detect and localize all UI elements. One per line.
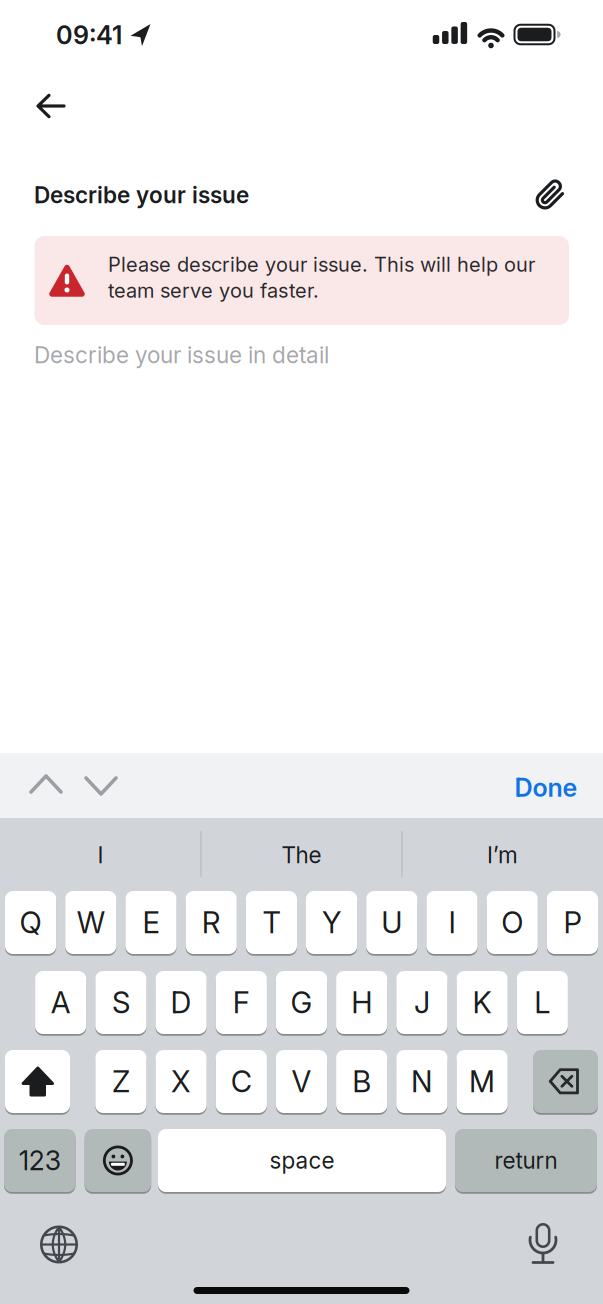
button[interactable]: R: [186, 891, 237, 954]
button[interactable]: I: [426, 891, 478, 954]
staticText: N: [411, 1064, 433, 1099]
button[interactable]: The: [206, 826, 396, 884]
button[interactable]: C: [216, 1050, 267, 1113]
button[interactable]: U: [366, 891, 417, 954]
button[interactable]: D: [155, 971, 207, 1034]
button[interactable]: O: [487, 891, 538, 954]
button[interactable]: M: [456, 1050, 508, 1113]
button[interactable]: L: [517, 971, 568, 1034]
staticText: I’m: [487, 842, 518, 868]
button[interactable]: return: [455, 1129, 597, 1192]
staticText: F: [233, 985, 250, 1020]
button[interactable]: Y: [306, 891, 357, 954]
staticText: The: [281, 842, 321, 868]
button[interactable]: Delete: [533, 1050, 598, 1113]
staticText: K: [473, 985, 492, 1020]
button[interactable]: Next field: [78, 775, 124, 801]
staticText: P: [563, 905, 581, 940]
button[interactable]: Z: [95, 1050, 146, 1113]
button[interactable]: F: [216, 971, 267, 1034]
staticText: 09:41: [56, 20, 122, 50]
staticText: X: [171, 1064, 191, 1099]
staticText: G: [290, 985, 312, 1020]
button[interactable]: Previous field: [23, 773, 69, 799]
button[interactable]: K: [456, 971, 508, 1034]
button[interactable]: A: [35, 971, 86, 1034]
staticText: U: [381, 905, 402, 940]
staticText: V: [291, 1064, 311, 1099]
button[interactable]: Back: [35, 84, 83, 128]
button[interactable]: N: [396, 1050, 447, 1113]
button[interactable]: I: [5, 826, 195, 884]
button[interactable]: J: [396, 971, 447, 1034]
staticText: Y: [322, 905, 341, 940]
button[interactable]: Shift: [5, 1050, 70, 1113]
staticText: E: [142, 905, 159, 940]
staticText: J: [414, 985, 430, 1020]
staticText: Please describe your issue. This will he…: [108, 253, 535, 276]
button[interactable]: H: [336, 971, 387, 1034]
button[interactable]: X: [155, 1050, 207, 1113]
staticText: A: [51, 985, 71, 1020]
button[interactable]: space: [158, 1129, 446, 1192]
staticText: space: [269, 1147, 334, 1174]
staticText: I: [448, 905, 455, 940]
staticText: Describe your issue: [34, 182, 249, 208]
button[interactable]: G: [276, 971, 327, 1034]
button[interactable]: B: [336, 1050, 387, 1113]
button[interactable]: Done: [514, 773, 577, 802]
staticText: S: [112, 985, 130, 1020]
staticText: 123: [19, 1145, 61, 1176]
staticText: O: [501, 905, 523, 940]
button[interactable]: S: [95, 971, 146, 1034]
button[interactable]: T: [246, 891, 297, 954]
staticText: I: [97, 842, 103, 868]
button[interactable]: Dictate: [521, 1221, 565, 1269]
staticText: Q: [20, 905, 42, 940]
button[interactable]: I’m: [407, 826, 597, 884]
button[interactable]: Numbers: [4, 1129, 75, 1192]
staticText: return: [494, 1147, 557, 1174]
staticText: R: [202, 905, 221, 940]
staticText: team serve you faster.: [108, 279, 319, 302]
staticText: H: [351, 985, 372, 1020]
staticText: D: [171, 985, 192, 1020]
staticText: T: [262, 905, 280, 940]
button[interactable]: V: [276, 1050, 327, 1113]
staticText: L: [534, 985, 550, 1020]
button[interactable]: E: [125, 891, 177, 954]
button[interactable]: P: [547, 891, 598, 954]
button[interactable]: Emoji: [85, 1129, 151, 1192]
staticText: W: [77, 905, 105, 940]
staticText: Done: [514, 773, 577, 802]
staticText: B: [352, 1064, 371, 1099]
staticText: Z: [112, 1064, 130, 1099]
button[interactable]: Next keyboard: [37, 1222, 81, 1266]
staticText: C: [231, 1064, 252, 1099]
button[interactable]: Attach file: [529, 173, 573, 217]
button[interactable]: W: [65, 891, 116, 954]
staticText: Describe your issue in detail: [34, 342, 329, 368]
button[interactable]: Q: [5, 891, 56, 954]
staticText: M: [469, 1064, 495, 1099]
